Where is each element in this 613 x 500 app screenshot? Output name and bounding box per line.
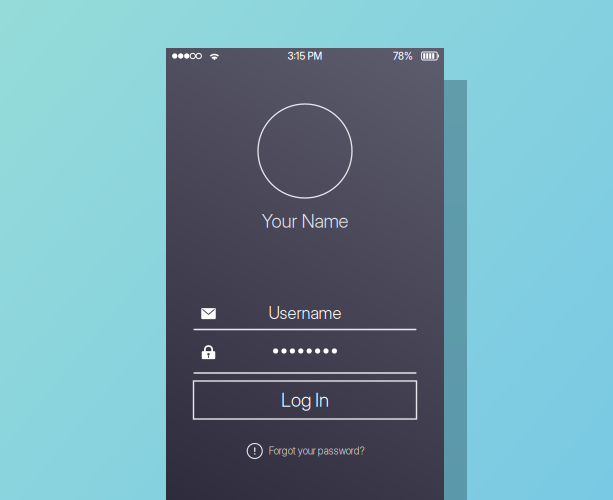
staticText: 78%	[393, 50, 413, 62]
button[interactable]: Forgot your password?	[247, 443, 365, 458]
button[interactable]: Log In	[193, 381, 416, 419]
staticText: 3:15 PM	[287, 50, 322, 62]
staticText: Log In	[281, 389, 329, 411]
button[interactable]	[193, 333, 416, 369]
button[interactable]	[193, 295, 416, 331]
staticText: Forgot your password?	[269, 445, 365, 457]
staticText: Your Name	[261, 210, 348, 232]
staticText: Username	[268, 303, 341, 323]
